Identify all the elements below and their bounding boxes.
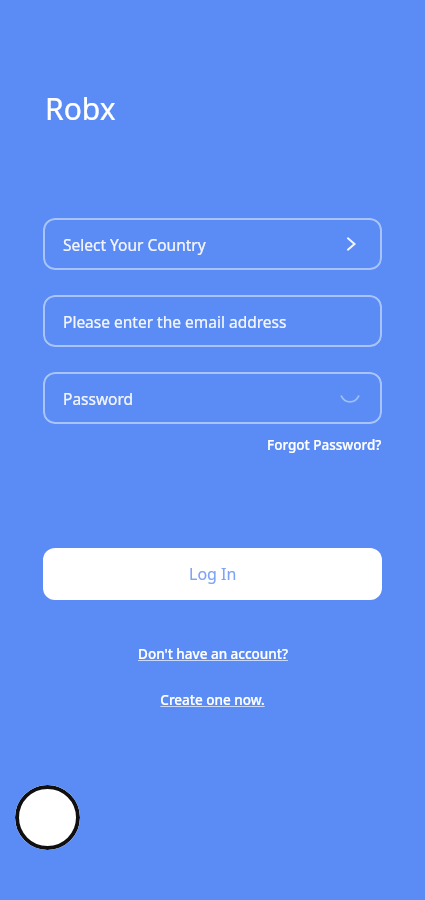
staticText: Please enter the email address [63,311,287,332]
button[interactable]: Select Your Country [43,218,382,270]
button[interactable]: Create one now. [160,691,265,709]
staticText: Select Your Country [63,234,206,255]
staticText: Don't have an account? [138,645,288,663]
button[interactable]: Password [43,372,382,424]
button[interactable]: Show password [338,386,362,410]
staticText: Create one now. [160,691,265,709]
button[interactable]: Open country picker [340,233,362,255]
button[interactable]: Home indicator [15,785,80,850]
button[interactable]: Forgot Password? [267,436,382,454]
button[interactable]: Log In [43,548,382,600]
staticText: Forgot Password? [267,436,382,454]
staticText: Log In [189,563,237,585]
staticText: Password [63,388,134,409]
button[interactable]: Don't have an account? [138,645,288,663]
button[interactable]: Please enter the email address [43,295,382,347]
staticText: Robx [45,88,116,129]
